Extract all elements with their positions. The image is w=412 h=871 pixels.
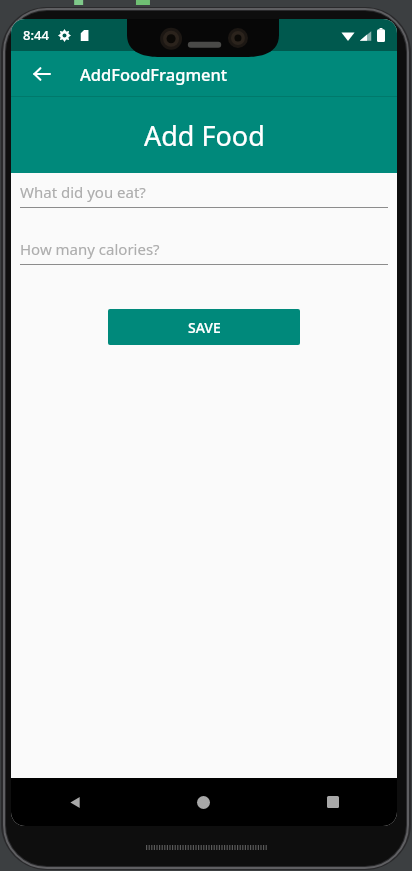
button[interactable]: What did you eat? [20, 177, 388, 207]
button[interactable]: How many calories? [20, 234, 388, 264]
button[interactable]: Home [139, 778, 268, 826]
staticText: SAVE [188, 318, 221, 337]
staticText: AddFoodFragment [80, 63, 228, 85]
staticText: Add Food [144, 117, 265, 154]
button[interactable]: SAVE [108, 309, 300, 345]
staticText: How many calories? [20, 239, 160, 259]
button[interactable]: Recents [268, 778, 397, 826]
staticText: 8:44 [23, 26, 49, 44]
button[interactable]: Navigate up [23, 55, 61, 93]
staticText: What did you eat? [20, 182, 146, 202]
button[interactable]: Back [11, 778, 139, 826]
